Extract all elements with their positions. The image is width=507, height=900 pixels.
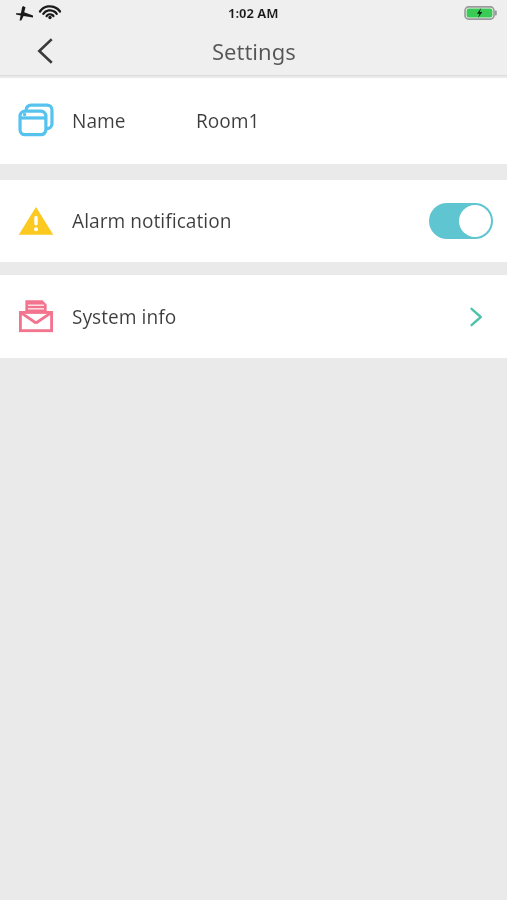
staticText: System info: [72, 304, 177, 330]
other: System info: [459, 300, 493, 334]
staticText: Room1: [196, 108, 260, 134]
button[interactable]: System info: [0, 275, 507, 358]
button[interactable]: Back: [0, 26, 92, 76]
staticText: Alarm notification: [72, 208, 232, 234]
button[interactable]: Name: [0, 78, 507, 164]
button[interactable]: Alarm notification: [0, 180, 507, 262]
staticText: 1:02 AM: [228, 4, 279, 22]
button[interactable]: Alarm notification toggle: [429, 203, 493, 239]
staticText: Name: [72, 108, 126, 134]
staticText: Settings: [212, 36, 296, 66]
